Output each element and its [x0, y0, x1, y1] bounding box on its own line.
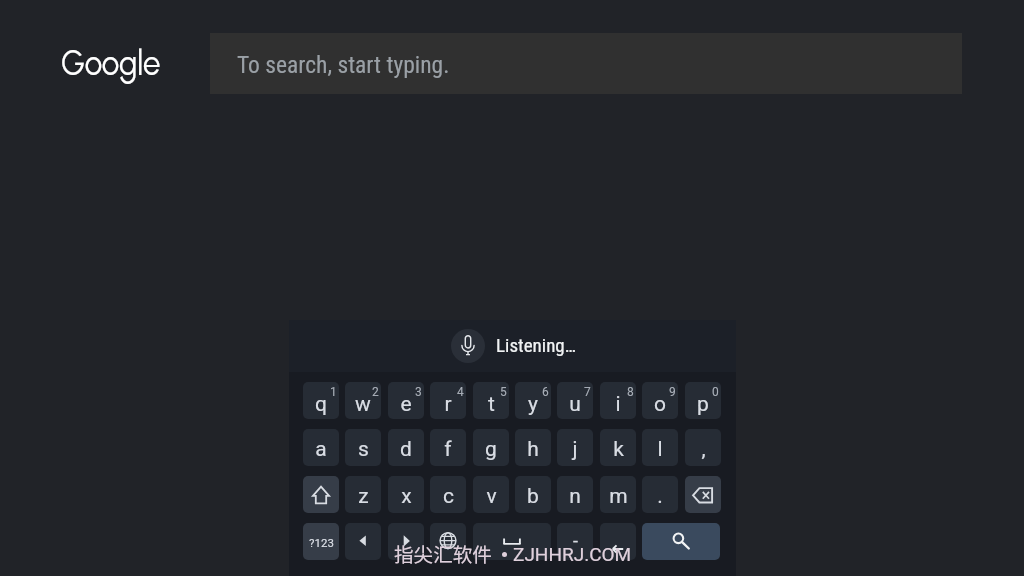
button[interactable]: Backspace: [685, 476, 721, 513]
button[interactable]: l: [642, 429, 678, 466]
staticText: 2: [372, 385, 379, 399]
staticText: 8: [627, 385, 634, 399]
staticText: e: [400, 392, 412, 417]
staticText: 9: [669, 385, 676, 399]
button[interactable]: f: [430, 429, 466, 466]
staticText: 1: [330, 385, 337, 399]
button[interactable]: m: [600, 476, 636, 513]
button[interactable]: i: [600, 382, 636, 419]
staticText: q: [315, 392, 327, 417]
staticText: 5: [500, 385, 507, 399]
staticText: k: [613, 437, 624, 462]
button[interactable]: Change keyboard language: [430, 523, 466, 560]
button[interactable]: o: [642, 382, 678, 419]
button[interactable]: q: [303, 382, 339, 419]
staticText: To search, start typing.: [237, 51, 450, 79]
button[interactable]: t: [473, 382, 509, 419]
button[interactable]: h: [515, 429, 551, 466]
button[interactable]: y: [515, 382, 551, 419]
staticText: i: [615, 392, 621, 417]
button[interactable]: u: [557, 382, 593, 419]
staticText: b: [527, 484, 539, 509]
button[interactable]: v: [473, 476, 509, 513]
staticText: Google: [61, 42, 161, 84]
button[interactable]: Move cursor right: [388, 523, 424, 560]
staticText: a: [315, 437, 327, 462]
staticText: z: [358, 484, 369, 509]
staticText: g: [485, 437, 497, 462]
staticText: 7: [584, 385, 591, 399]
button[interactable]: n: [557, 476, 593, 513]
staticText: p: [697, 392, 709, 417]
staticText: 指尖汇软件: [394, 539, 492, 567]
staticText: d: [400, 437, 412, 462]
staticText: -: [573, 530, 578, 551]
staticText: j: [572, 437, 578, 462]
button[interactable]: ?123: [303, 523, 339, 560]
button[interactable]: r: [430, 382, 466, 419]
staticText: 4: [457, 385, 464, 399]
button[interactable]: d: [388, 429, 424, 466]
staticText: ?123: [309, 536, 334, 549]
button[interactable]: Move cursor left: [345, 523, 381, 560]
button[interactable]: Shift: [303, 476, 339, 513]
button[interactable]: ,: [685, 429, 721, 466]
staticText: v: [486, 484, 497, 509]
staticText: y: [528, 392, 538, 417]
button[interactable]: z: [345, 476, 381, 513]
button[interactable]: -: [557, 523, 593, 560]
button[interactable]: .: [642, 476, 678, 513]
staticText: t: [488, 392, 495, 417]
staticText: w: [355, 392, 371, 417]
staticText: 6: [542, 385, 549, 399]
button[interactable]: c: [430, 476, 466, 513]
staticText: h: [527, 437, 539, 462]
staticText: o: [654, 392, 666, 417]
staticText: x: [401, 484, 412, 509]
button[interactable]: p: [685, 382, 721, 419]
staticText: m: [609, 484, 628, 509]
button[interactable]: k: [600, 429, 636, 466]
staticText: r: [444, 392, 452, 417]
staticText: s: [358, 437, 369, 462]
staticText: ,: [701, 437, 706, 462]
button[interactable]: Space: [473, 523, 551, 560]
staticText: n: [569, 484, 581, 509]
staticText: u: [569, 392, 581, 417]
staticText: l: [657, 437, 663, 462]
button[interactable]: Microphone: [451, 329, 485, 363]
button[interactable]: Search: [642, 523, 720, 560]
button[interactable]: Google: [61, 42, 191, 86]
button[interactable]: x: [388, 476, 424, 513]
staticText: f: [444, 437, 452, 462]
button[interactable]: g: [473, 429, 509, 466]
staticText: 3: [415, 385, 422, 399]
button[interactable]: j: [557, 429, 593, 466]
button[interactable]: To search, start typing.: [210, 33, 962, 94]
button[interactable]: a: [303, 429, 339, 466]
staticText: c: [443, 484, 454, 509]
button[interactable]: b: [515, 476, 551, 513]
staticText: Listening…: [496, 334, 576, 356]
button[interactable]: w: [345, 382, 381, 419]
button[interactable]: e: [388, 382, 424, 419]
staticText: .: [657, 484, 663, 509]
staticText: 0: [712, 385, 719, 399]
button[interactable]: New line: [600, 523, 636, 560]
staticText: ZJHHRJ.COM: [513, 543, 632, 565]
button[interactable]: s: [345, 429, 381, 466]
